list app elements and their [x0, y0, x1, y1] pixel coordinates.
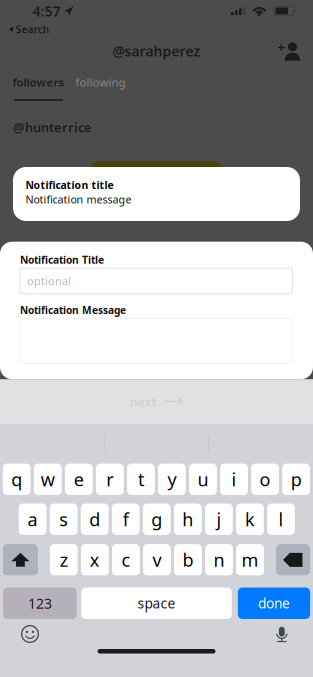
staticText: q: [11, 467, 22, 492]
staticText: a: [28, 507, 38, 531]
staticText: u: [197, 467, 208, 492]
staticText: s: [59, 507, 68, 531]
staticText: w: [41, 467, 55, 492]
button[interactable]: n: [205, 544, 233, 576]
staticText: x: [90, 548, 100, 572]
staticText: followers: [12, 74, 64, 90]
staticText: Notification Message: [20, 303, 126, 317]
button[interactable]: next: [0, 379, 313, 424]
staticText: g: [151, 507, 162, 531]
staticText: i: [232, 467, 237, 492]
staticText: Notification title: [25, 178, 113, 192]
staticText: Search: [16, 22, 49, 36]
staticText: y: [167, 467, 176, 492]
button[interactable]: l: [267, 503, 295, 535]
staticText: next: [129, 393, 156, 410]
staticText: Notification message: [25, 192, 131, 207]
button[interactable]: q: [3, 464, 31, 495]
button[interactable]: Shift: [3, 544, 38, 576]
staticText: following: [75, 74, 125, 90]
button[interactable]: m: [236, 544, 264, 576]
staticText: @hunterrice: [13, 118, 92, 136]
staticText: t: [138, 467, 144, 492]
button[interactable]: e: [65, 464, 93, 495]
button[interactable]: g: [143, 503, 171, 535]
button[interactable]: Emoji keyboard: [20, 624, 39, 643]
button[interactable]: z: [50, 544, 78, 576]
button[interactable]: x: [81, 544, 109, 576]
staticText: m: [242, 548, 259, 572]
button[interactable]: c: [112, 544, 140, 576]
button[interactable]: followers: [0, 74, 75, 101]
staticText: r: [106, 467, 113, 492]
staticText: b: [182, 548, 193, 572]
staticText: l: [278, 507, 283, 531]
staticText: f: [123, 507, 129, 531]
button[interactable]: o: [251, 464, 279, 495]
button[interactable]: s: [50, 503, 78, 535]
button[interactable]: d: [81, 503, 109, 535]
staticText: j: [216, 507, 221, 531]
staticText: 4:57: [32, 1, 60, 21]
staticText: Notification Title: [20, 253, 104, 267]
button[interactable]: t: [127, 464, 155, 495]
staticText: d: [89, 507, 100, 531]
button[interactable]: v: [143, 544, 171, 576]
staticText: h: [182, 507, 193, 531]
button[interactable]: Delete: [276, 544, 310, 576]
button[interactable]: f: [112, 503, 140, 535]
staticText: space: [138, 594, 176, 613]
staticText: c: [121, 548, 130, 572]
button[interactable]: done: [238, 587, 310, 619]
button[interactable]: y: [158, 464, 186, 495]
staticText: k: [245, 507, 255, 531]
button[interactable]: b: [174, 544, 202, 576]
staticText: optional: [27, 273, 71, 288]
staticText: @sarahperez: [112, 42, 200, 61]
button[interactable]: u: [189, 464, 217, 495]
staticText: o: [260, 467, 271, 492]
staticText: e: [74, 467, 84, 492]
button[interactable]: w: [34, 464, 62, 495]
button[interactable]: 123: [3, 587, 77, 619]
button[interactable]: j: [205, 503, 233, 535]
button[interactable]: following: [75, 74, 125, 101]
button[interactable]: p: [282, 464, 310, 495]
staticText: 123: [28, 594, 52, 613]
staticText: z: [60, 548, 68, 572]
staticText: v: [152, 548, 161, 572]
staticText: done: [258, 594, 290, 613]
button[interactable]: k: [236, 503, 264, 535]
button[interactable]: Add friend: [278, 38, 313, 65]
staticText: n: [214, 548, 225, 572]
button[interactable]: i: [220, 464, 248, 495]
staticText: p: [291, 467, 302, 492]
button[interactable]: Dictation: [275, 625, 289, 643]
button[interactable]: space: [81, 587, 232, 619]
button[interactable]: r: [96, 464, 124, 495]
button[interactable]: h: [174, 503, 202, 535]
button[interactable]: a: [19, 503, 46, 535]
